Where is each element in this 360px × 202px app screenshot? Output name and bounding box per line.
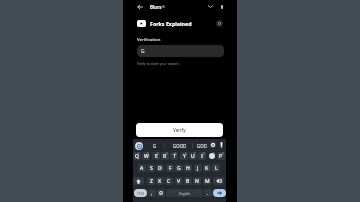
staticText: E (155, 153, 158, 160)
button[interactable]: E (152, 152, 160, 160)
staticText: 4 (166, 152, 168, 156)
staticText: S (150, 165, 153, 172)
button[interactable]: More options (217, 2, 226, 11)
button[interactable]: V (175, 177, 183, 185)
staticText: W (144, 153, 149, 160)
button[interactable]: U (189, 152, 197, 160)
button[interactable]: L (212, 164, 220, 172)
staticText: GOD (197, 143, 207, 149)
staticText: 2 (147, 152, 149, 156)
staticText: B (186, 178, 190, 185)
button[interactable]: D (156, 164, 164, 172)
staticText: ?123 (137, 191, 145, 195)
staticText: Verification (137, 36, 161, 42)
button[interactable]: G (175, 164, 183, 172)
staticText: 8 (203, 152, 205, 156)
button[interactable]: Shift (133, 177, 144, 185)
button[interactable]: Verify (136, 123, 223, 137)
button[interactable]: X (156, 177, 164, 185)
button[interactable]: Z (147, 177, 155, 185)
staticText: V (177, 178, 181, 185)
staticText: Y (183, 153, 186, 160)
staticText: . (207, 190, 209, 197)
button[interactable]: GOOD (166, 141, 193, 150)
staticText: G (141, 48, 145, 55)
staticText: Forks Explained (150, 20, 192, 27)
staticText: R (163, 153, 167, 160)
staticText: Z (150, 178, 153, 185)
staticText: X (158, 178, 162, 185)
button[interactable]: F (166, 164, 174, 172)
staticText: 9 (213, 152, 215, 156)
staticText: N (195, 178, 199, 185)
button[interactable]: I (198, 152, 206, 160)
staticText: 3 (157, 152, 159, 156)
button[interactable]: ?123 (134, 189, 147, 197)
staticText: Q (135, 153, 139, 160)
button[interactable]: G (137, 45, 224, 57)
staticText: H (186, 165, 190, 172)
staticText: 0 (222, 152, 224, 156)
button[interactable]: 9 (208, 152, 216, 160)
button[interactable]: GOD (195, 141, 209, 150)
button[interactable]: G (145, 141, 164, 150)
button[interactable]: Space (166, 189, 203, 197)
button[interactable]: Google Assistant (135, 142, 143, 150)
staticText: 5 (175, 152, 177, 156)
button[interactable]: Expand (206, 2, 215, 11)
button[interactable]: Q (133, 152, 141, 160)
button[interactable]: Y (180, 152, 188, 160)
staticText: D (158, 165, 162, 172)
button[interactable]: J (194, 164, 202, 172)
staticText: C (167, 178, 171, 185)
staticText: G (177, 165, 181, 172)
button[interactable]: Backspace (213, 177, 224, 185)
staticText: F (169, 165, 172, 172)
staticText: K (205, 165, 209, 172)
button[interactable]: Search (209, 141, 216, 148)
staticText: Blurs (150, 4, 162, 10)
staticText: GOOD (173, 143, 187, 149)
staticText: M (205, 178, 210, 185)
button[interactable]: S (147, 164, 155, 172)
button[interactable]: Enter (213, 189, 226, 197)
button[interactable]: M (203, 177, 211, 185)
staticText: , (151, 190, 153, 197)
staticText: Verify (173, 127, 186, 133)
button[interactable]: B (184, 177, 192, 185)
button[interactable]: N (193, 177, 201, 185)
staticText: G (153, 143, 157, 149)
staticText: Verify to claim your reward (137, 61, 179, 65)
button[interactable]: Back (135, 2, 145, 12)
button[interactable]: , (148, 189, 156, 197)
staticText: L (215, 165, 218, 172)
button[interactable]: K (203, 164, 211, 172)
staticText: 6 (185, 152, 187, 156)
button[interactable]: T (170, 152, 178, 160)
button[interactable]: P (217, 152, 225, 160)
staticText: I (201, 153, 203, 160)
button[interactable]: Settings (216, 20, 223, 27)
button[interactable]: Emoji (157, 189, 165, 197)
button[interactable]: R (161, 152, 169, 160)
button[interactable]: . (204, 189, 212, 197)
button[interactable]: A (138, 164, 146, 172)
staticText: P (219, 153, 223, 160)
button[interactable]: W (142, 152, 150, 160)
staticText: English (179, 191, 191, 195)
button[interactable]: Voice input (218, 142, 224, 148)
button[interactable]: H (184, 164, 192, 172)
button[interactable]: C (165, 177, 173, 185)
staticText: T (173, 153, 176, 160)
staticText: 7 (194, 152, 196, 156)
staticText: 1 (138, 152, 140, 156)
staticText: U (191, 153, 195, 160)
staticText: A (140, 165, 144, 172)
staticText: J (197, 165, 199, 172)
